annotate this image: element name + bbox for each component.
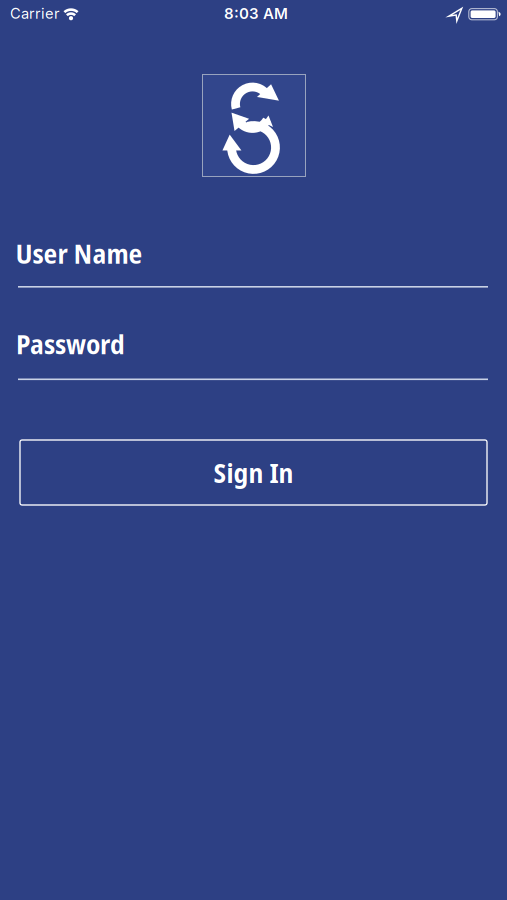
staticText: Password — [16, 325, 125, 362]
staticText: Sign In — [213, 454, 293, 491]
staticText: User Name — [15, 234, 142, 272]
button[interactable]: Sign In — [20, 440, 487, 505]
button[interactable]: Password — [16, 325, 488, 381]
staticText: 8:03 AM — [224, 4, 288, 23]
button[interactable]: User Name — [15, 234, 488, 288]
staticText: Carrier — [10, 5, 60, 22]
